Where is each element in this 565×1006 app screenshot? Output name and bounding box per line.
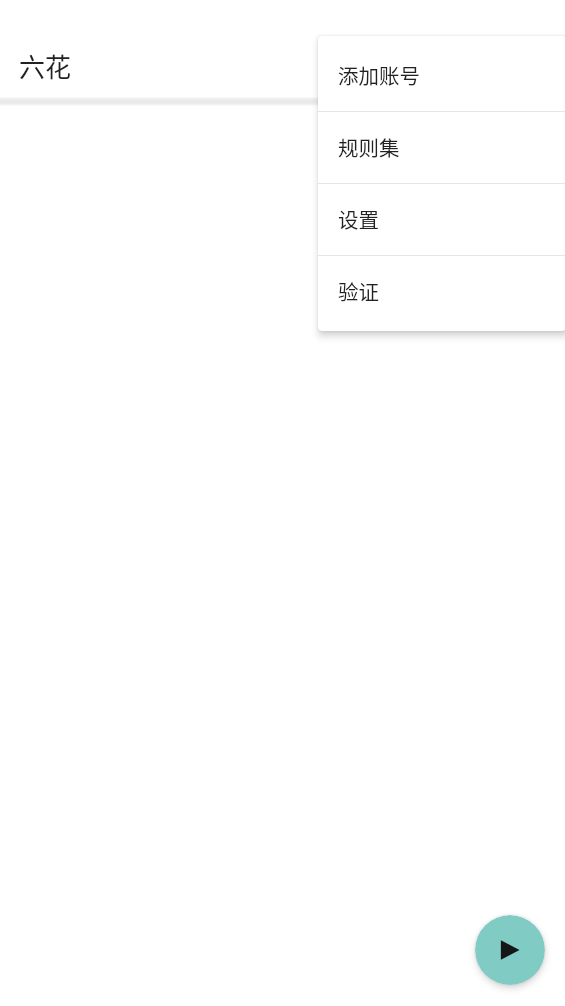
staticText: 六花: [19, 47, 72, 85]
button[interactable]: 验证: [318, 256, 565, 327]
button[interactable]: 设置: [318, 184, 565, 255]
button[interactable]: 添加账号: [318, 40, 565, 111]
staticText: 设置: [338, 204, 379, 234]
staticText: 规则集: [338, 132, 400, 162]
button[interactable]: Start: [475, 915, 545, 985]
button[interactable]: 规则集: [318, 112, 565, 183]
staticText: 添加账号: [338, 60, 420, 90]
staticText: 验证: [338, 276, 379, 306]
